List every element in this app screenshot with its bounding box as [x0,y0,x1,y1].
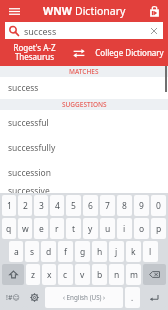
button[interactable]: 4 [50,195,64,216]
staticText: successive [8,185,50,193]
button[interactable]: y [83,218,98,239]
button[interactable]: h [92,241,107,262]
staticText: l [149,246,152,258]
staticText: SUGGESTIONS [62,100,107,109]
staticText: WNW [43,4,75,18]
button[interactable]: successive [0,185,168,193]
staticText: w [22,223,29,235]
staticText: 9 [139,200,144,212]
staticText: g [80,246,86,258]
button[interactable]: College Dictionary [92,39,166,66]
button[interactable]: 9 [134,195,149,216]
button[interactable]: d [41,241,56,262]
button[interactable]: Roget's A-Z Thesaurus [2,39,66,66]
button[interactable]: k [126,241,141,262]
button[interactable]: 1 [2,195,16,216]
staticText: s [30,246,35,258]
staticText: m [130,269,138,281]
button[interactable]: j [109,241,124,262]
staticText: College Dictionary [95,47,164,58]
button[interactable]: successfully [0,135,168,160]
button[interactable]: e [34,218,48,239]
button[interactable]: w [18,218,32,239]
button[interactable]: Store [145,2,163,20]
staticText: c [63,269,68,281]
button[interactable]: g [75,241,90,262]
button[interactable]: l [143,241,158,262]
staticText: !#☺ [6,293,20,303]
staticText: successfully [8,142,56,154]
staticText: succession [8,167,52,179]
button[interactable]: Keyboard settings [26,287,43,308]
button[interactable]: 0 [151,195,166,216]
button[interactable]: successful [0,110,168,135]
button[interactable]: Menu [4,1,24,21]
button[interactable]: x [42,264,56,285]
button[interactable]: u [100,218,115,239]
button[interactable]: ‹ English (US) › [45,287,123,308]
button[interactable]: m [126,264,141,285]
button[interactable]: 8 [117,195,132,216]
staticText: success [24,25,57,37]
button[interactable]: Backspace [143,264,166,285]
button[interactable]: z [26,264,40,285]
staticText: successful [8,117,49,129]
staticText: 7 [105,200,110,212]
button[interactable]: o [134,218,149,239]
staticText: r [55,223,59,235]
staticText: h [97,246,103,258]
button[interactable]: Shift [2,264,24,285]
staticText: . [131,292,134,303]
staticText: z [31,269,35,281]
staticText: t [72,223,76,235]
button[interactable]: Enter [142,287,166,308]
staticText: Roget's A-Z Thesaurus [13,42,56,63]
staticText: p [156,223,162,235]
button[interactable]: succession [0,160,168,185]
staticText: k [131,246,136,258]
staticText: 6 [88,200,93,212]
button[interactable]: v [75,264,90,285]
button[interactable]: q [2,218,16,239]
button[interactable]: c [58,264,73,285]
staticText: MATCHES [69,67,99,76]
button[interactable]: Clear search [148,25,159,36]
staticText: Dictionary [75,4,126,18]
button[interactable]: 2 [18,195,32,216]
button[interactable]: s [25,241,39,262]
staticText: b [97,269,103,281]
button[interactable]: 3 [34,195,48,216]
staticText: a [14,246,19,258]
button[interactable]: n [109,264,124,285]
staticText: 0 [156,200,161,212]
staticText: j [115,246,118,258]
staticText: i [123,223,126,235]
button[interactable]: success [0,77,168,99]
staticText: ‹ English (US) › [63,293,106,302]
staticText: 3 [39,200,44,212]
staticText: o [139,223,145,235]
staticText: y [88,223,93,235]
staticText: 4 [55,200,60,212]
staticText: d [46,246,52,258]
button[interactable]: Swap dictionaries [66,39,92,66]
button[interactable]: i [117,218,132,239]
staticText: u [105,223,111,235]
button[interactable]: f [58,241,73,262]
staticText: 8 [122,200,127,212]
button[interactable]: 7 [100,195,115,216]
staticText: 2 [23,200,28,212]
staticText: 1 [7,200,12,212]
button[interactable]: a [9,241,23,262]
button[interactable]: b [92,264,107,285]
button[interactable]: !#☺ [2,287,24,308]
button[interactable]: . [125,287,140,308]
staticText: n [114,269,120,281]
button[interactable]: 5 [66,195,81,216]
button[interactable]: success [5,22,163,39]
button[interactable]: t [66,218,81,239]
staticText: q [6,223,12,235]
button[interactable]: 6 [83,195,98,216]
button[interactable]: p [151,218,166,239]
button[interactable]: r [50,218,64,239]
